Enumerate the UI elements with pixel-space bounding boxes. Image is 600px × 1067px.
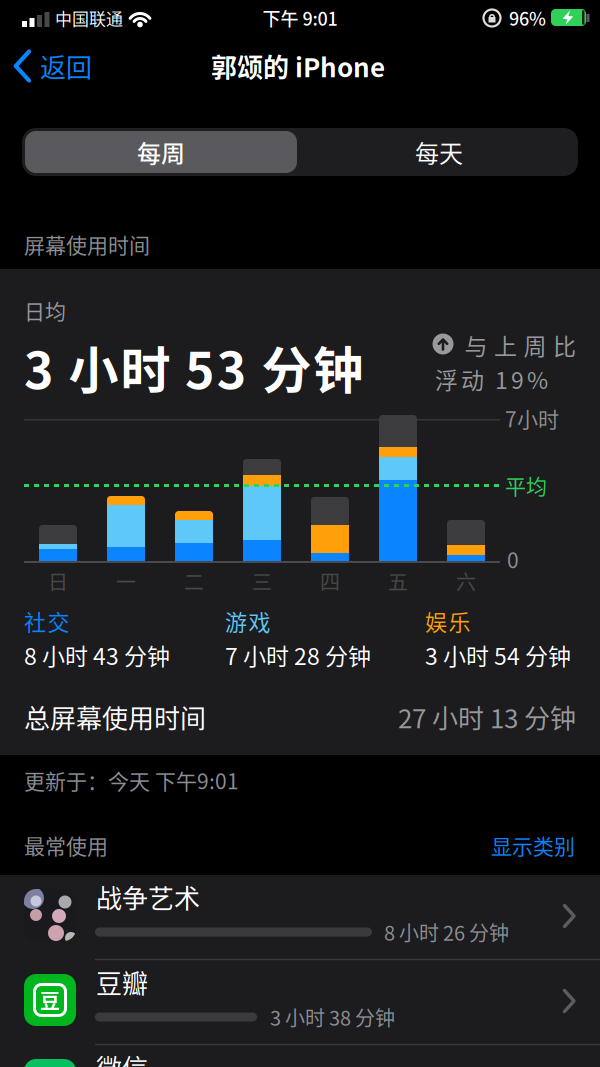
staticText: 更新于：今天 下午9:01 — [24, 765, 239, 795]
staticText: 与上周比 — [464, 328, 576, 362]
staticText: 96% — [509, 5, 546, 31]
staticText: 3 小时 38 分钟 — [270, 1002, 395, 1031]
staticText: 27 小时 13 分钟 — [398, 698, 576, 736]
button[interactable]: 显示类别 — [491, 830, 575, 860]
staticText: 0 — [507, 544, 519, 574]
button[interactable]: 每周 — [22, 128, 300, 176]
staticText: 3 小时 53 分钟 — [24, 331, 363, 403]
staticText: 豆 — [40, 985, 60, 1014]
button[interactable]: 豆 — [0, 960, 600, 1045]
staticText: 日均 — [24, 295, 66, 325]
button[interactable]: 微信 — [0, 1045, 600, 1067]
staticText: 微信 — [96, 1048, 148, 1067]
staticText: 7 小时 28 分钟 — [225, 638, 371, 672]
staticText: 一 — [116, 566, 136, 595]
staticText: 四 — [320, 566, 340, 595]
staticText: 游戏 — [225, 605, 270, 637]
staticText: 下午 9:01 — [262, 5, 337, 31]
staticText: 郭颂的 iPhone — [211, 47, 385, 85]
staticText: 二 — [184, 566, 204, 595]
staticText: 最常使用 — [24, 830, 108, 860]
staticText: 中国联通 — [55, 6, 123, 30]
staticText: 8 小时 43 分钟 — [24, 638, 170, 672]
staticText: 战争艺术 — [96, 878, 200, 916]
staticText: 豆瓣 — [96, 963, 148, 1001]
staticText: 3 小时 54 分钟 — [425, 638, 571, 672]
staticText: 显示类别 — [491, 830, 575, 860]
staticText: 屏幕使用时间 — [24, 229, 150, 259]
staticText: 每天 — [415, 135, 463, 169]
staticText: 三 — [252, 566, 272, 595]
staticText: 五 — [388, 566, 408, 595]
button[interactable]: 每天 — [300, 128, 578, 176]
staticText: 浮动 19% — [435, 362, 548, 396]
staticText: 总屏幕使用时间 — [24, 698, 206, 736]
staticText: 7小时 — [505, 403, 559, 433]
staticText: 8 小时 26 分钟 — [384, 917, 509, 946]
staticText: 六 — [456, 566, 476, 595]
staticText: 日 — [48, 566, 68, 595]
staticText: 平均 — [505, 470, 547, 500]
staticText: 社交 — [24, 605, 69, 637]
staticText: 娱乐 — [425, 605, 470, 637]
staticText: 返回 — [40, 47, 92, 85]
staticText: 每周 — [137, 135, 185, 169]
button[interactable]: 返回 — [14, 40, 104, 92]
button[interactable]: 战争艺术 — [0, 875, 600, 960]
